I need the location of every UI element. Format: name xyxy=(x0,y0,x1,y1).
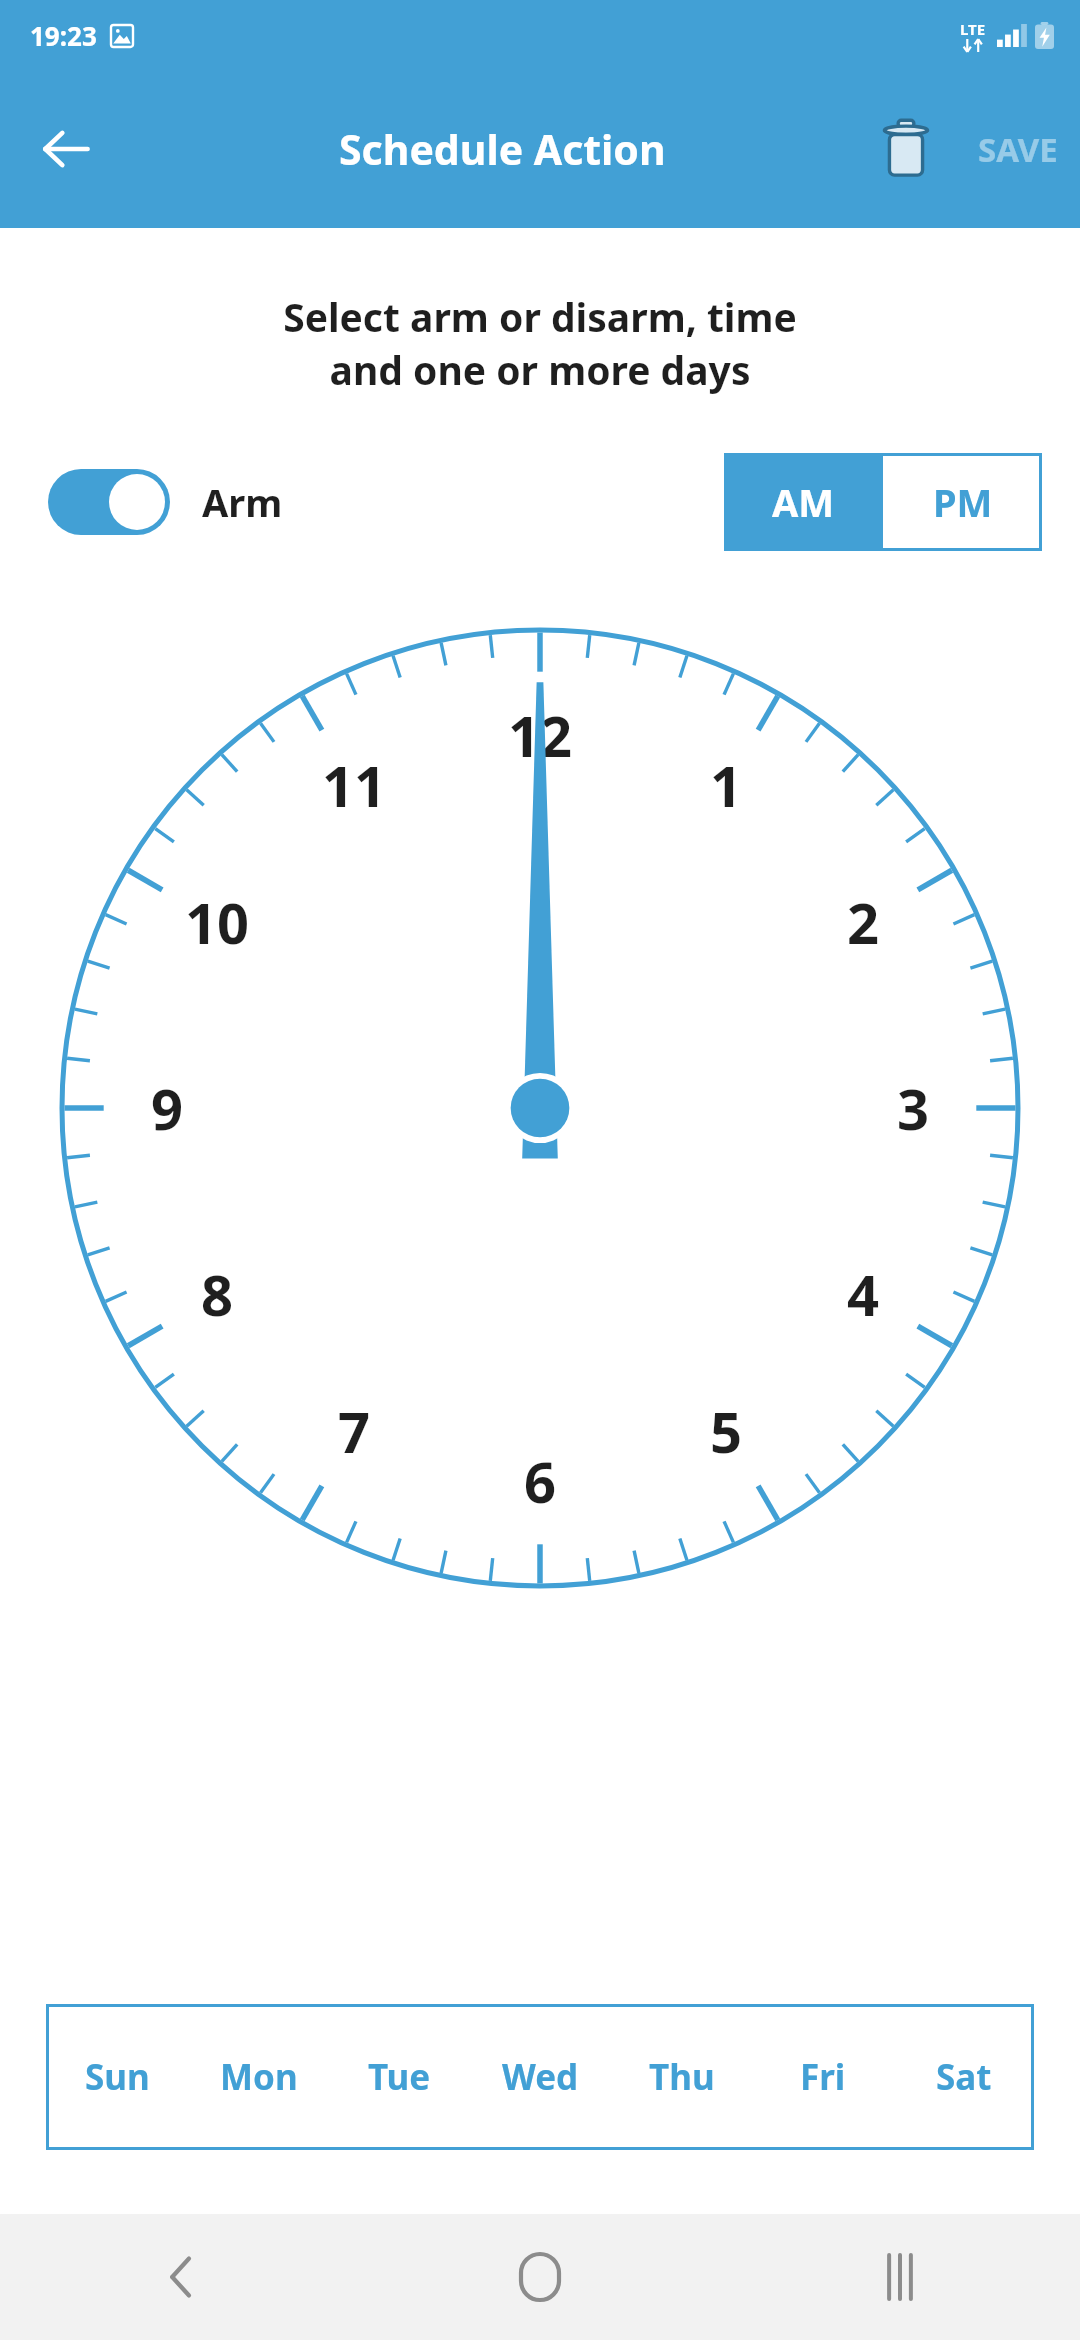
button[interactable]: Fri xyxy=(752,2004,893,2150)
staticText: Thu xyxy=(649,2053,715,2101)
staticText: 3 xyxy=(897,1070,930,1146)
button[interactable]: PM xyxy=(883,453,1042,551)
button[interactable]: Thu xyxy=(611,2004,752,2150)
button[interactable]: Select time on clock xyxy=(59,627,1021,1589)
staticText: Schedule Action xyxy=(339,121,666,177)
staticText: Fri xyxy=(800,2053,846,2101)
staticText: PM xyxy=(933,476,993,528)
button[interactable]: SAVE xyxy=(956,70,1080,228)
staticText: Sat xyxy=(936,2053,992,2101)
staticText: Select arm or disarm, time and one or mo… xyxy=(0,290,1080,397)
staticText: 7 xyxy=(338,1393,371,1469)
staticText: 1 xyxy=(710,747,743,823)
staticText: 12 xyxy=(508,697,573,773)
staticText: SAVE xyxy=(978,127,1058,172)
button[interactable]: AM xyxy=(724,453,883,551)
button[interactable]: Wed xyxy=(470,2004,611,2150)
staticText: 8 xyxy=(201,1256,234,1332)
staticText: Sun xyxy=(85,2053,150,2101)
staticText: 9 xyxy=(151,1070,184,1146)
button[interactable]: Back xyxy=(18,101,114,197)
button[interactable]: Back xyxy=(0,2214,360,2340)
staticText: Arm xyxy=(202,476,283,528)
staticText: 4 xyxy=(847,1256,880,1332)
staticText: 6 xyxy=(524,1443,557,1519)
button[interactable]: Delete xyxy=(856,99,956,199)
staticText: LTE xyxy=(960,19,986,39)
button[interactable]: Mon xyxy=(188,2004,329,2150)
button[interactable]: Home xyxy=(360,2214,720,2340)
staticText: 5 xyxy=(710,1393,743,1469)
button[interactable]: Sun xyxy=(46,2004,188,2150)
staticText: 2 xyxy=(847,884,880,960)
staticText: Wed xyxy=(502,2053,579,2101)
staticText: AM xyxy=(772,476,835,528)
staticText: 19:23 xyxy=(30,18,97,53)
staticText: 10 xyxy=(185,884,250,960)
staticText: 11 xyxy=(322,747,387,823)
button[interactable]: Arm xyxy=(48,469,283,535)
button[interactable]: Recent apps xyxy=(720,2214,1080,2340)
button[interactable]: Sat xyxy=(893,2004,1034,2150)
button[interactable]: Tue xyxy=(329,2004,470,2150)
staticText: Mon xyxy=(220,2053,298,2101)
staticText: Tue xyxy=(368,2053,431,2101)
